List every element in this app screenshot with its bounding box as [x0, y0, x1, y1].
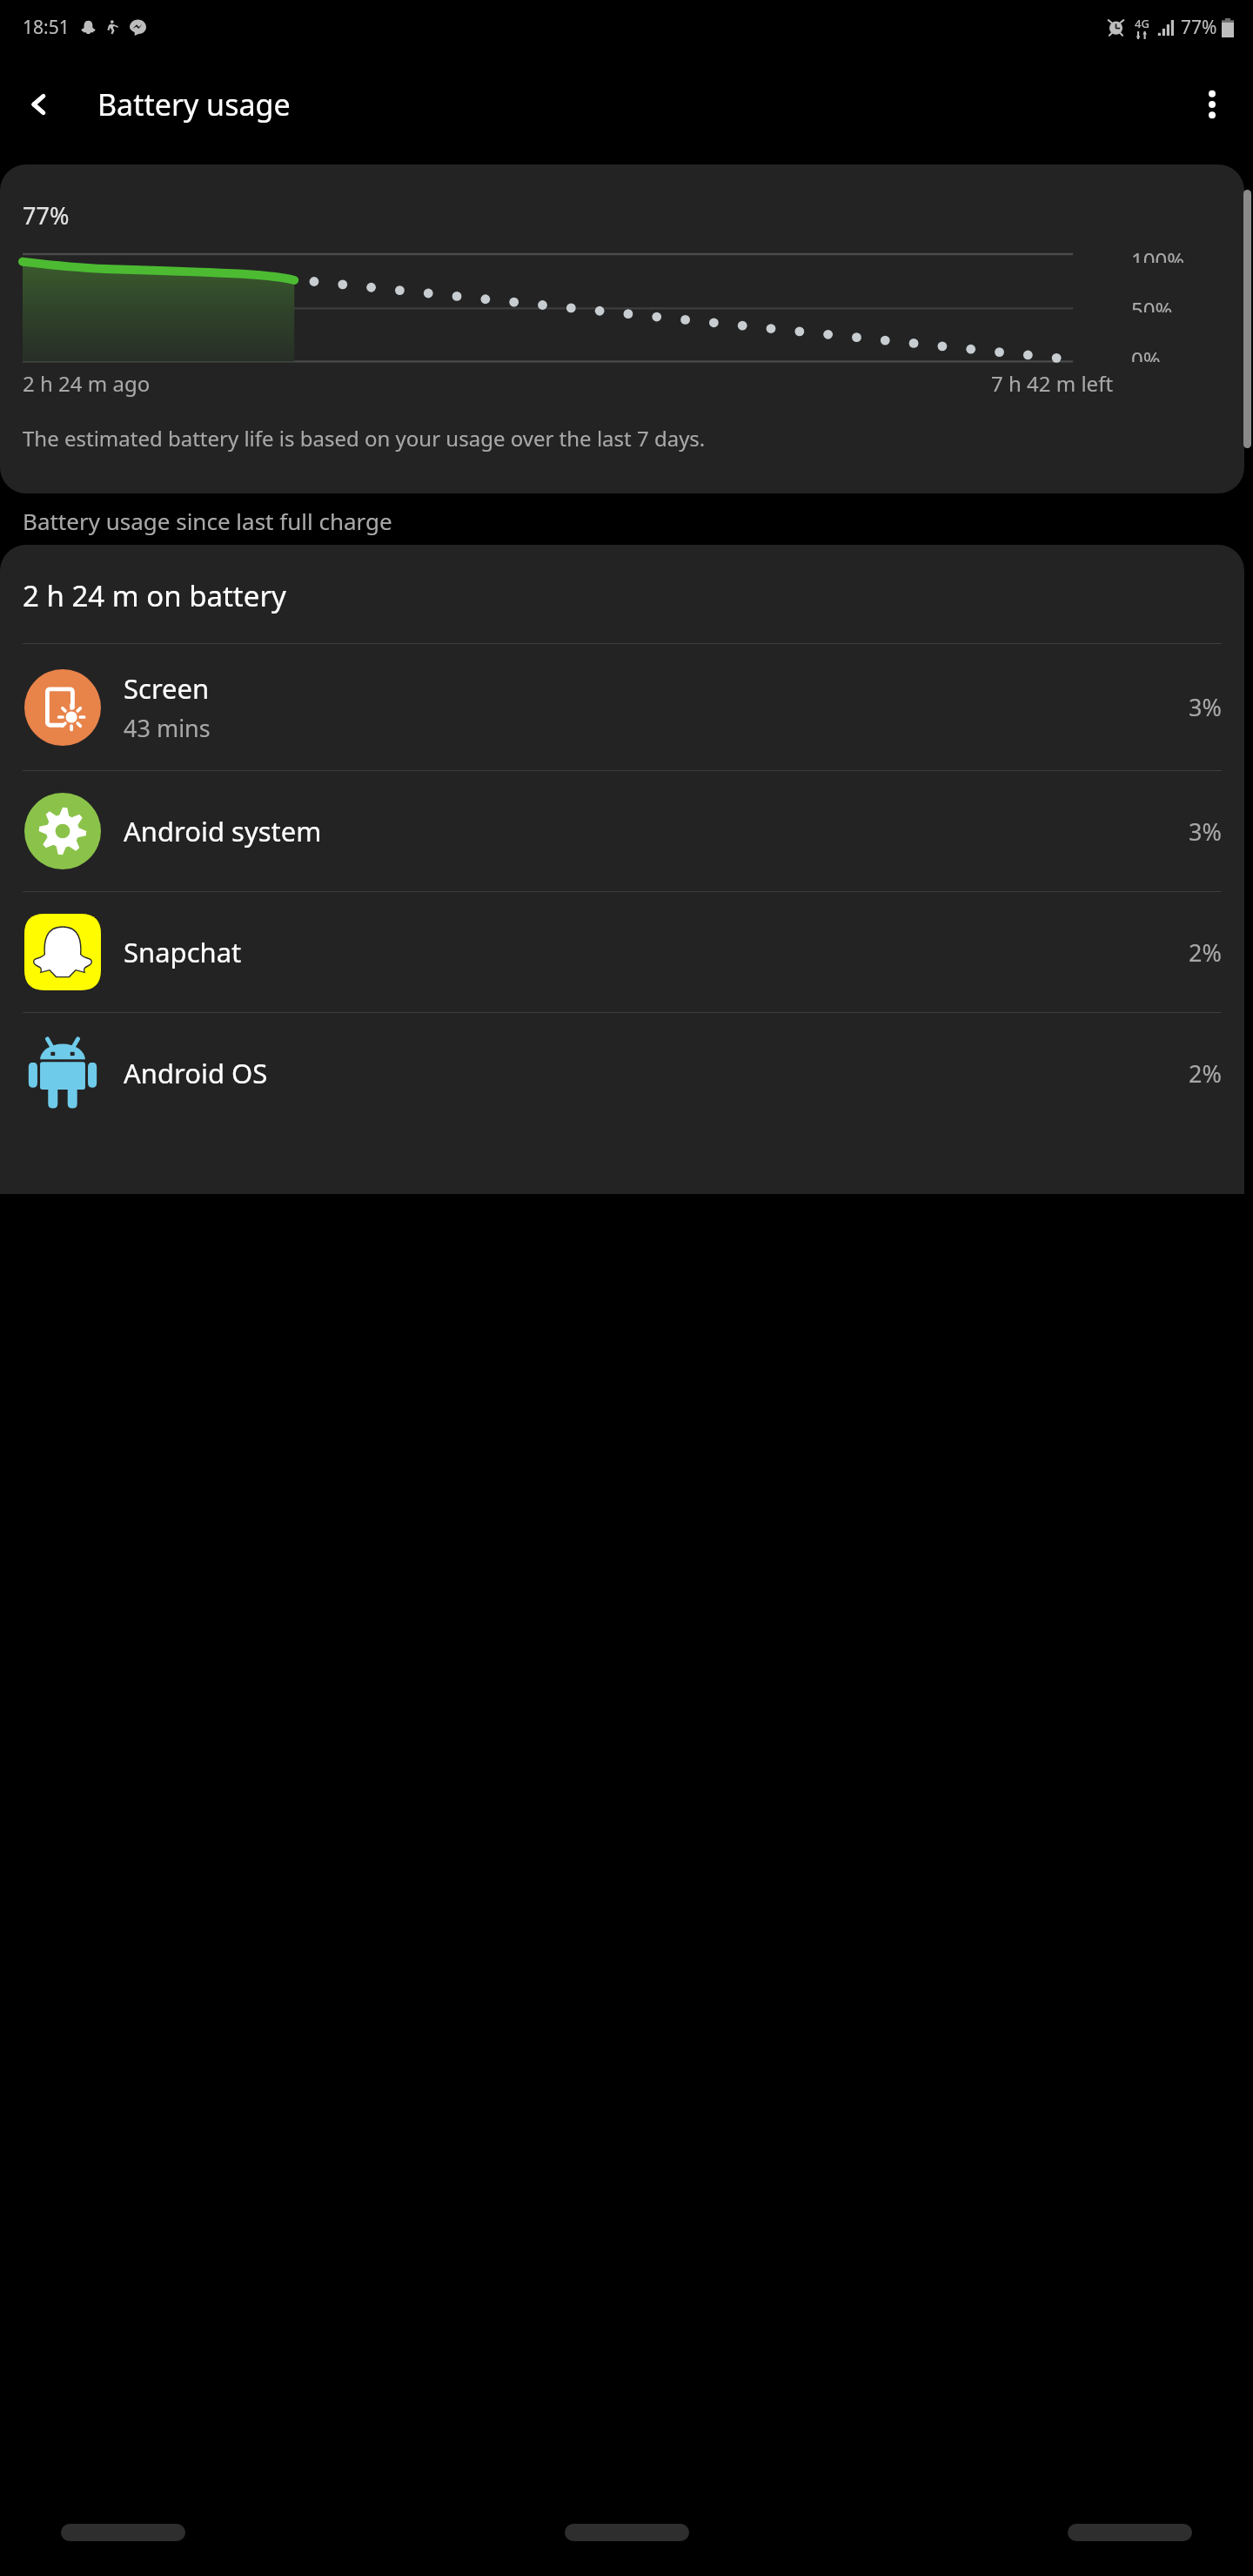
button[interactable]: Recents [61, 2524, 185, 2541]
button[interactable]: Back [12, 77, 66, 131]
staticText: Battery usage since last full charge [23, 506, 392, 536]
staticText: Screen [124, 670, 210, 707]
button[interactable]: Android OS [0, 1013, 1244, 1133]
staticText: 2% [1189, 936, 1222, 969]
staticText: 4G [1135, 16, 1149, 31]
button[interactable]: Screen [0, 644, 1244, 770]
staticText: Android OS [124, 1055, 268, 1091]
button[interactable]: Back [1068, 2524, 1192, 2541]
staticText: Battery usage [97, 84, 291, 124]
staticText: 3% [1189, 691, 1222, 723]
staticText: 7 h 42 m left [991, 369, 1114, 398]
staticText: 100% [1131, 245, 1185, 263]
staticText: 18:51 [23, 15, 70, 40]
staticText: Snapchat [124, 934, 242, 970]
staticText: 3% [1189, 815, 1222, 848]
staticText: 77% [23, 199, 70, 231]
button[interactable]: Android system [0, 771, 1244, 891]
staticText: 43 mins [124, 712, 211, 744]
staticText: 2% [1189, 1057, 1222, 1090]
staticText: 2 h 24 m ago [23, 369, 151, 398]
button[interactable]: 77% [0, 164, 1244, 493]
staticText: 50% [1131, 295, 1173, 312]
staticText: 77% [1181, 15, 1217, 40]
button[interactable]: Snapchat [0, 892, 1244, 1012]
staticText: 0% [1131, 345, 1161, 362]
button[interactable]: Home [565, 2524, 689, 2541]
staticText: Android system [124, 813, 322, 849]
staticText: The estimated battery life is based on y… [23, 424, 706, 453]
staticText: 2 h 24 m on battery [23, 576, 286, 615]
button[interactable]: More options [1185, 77, 1239, 131]
